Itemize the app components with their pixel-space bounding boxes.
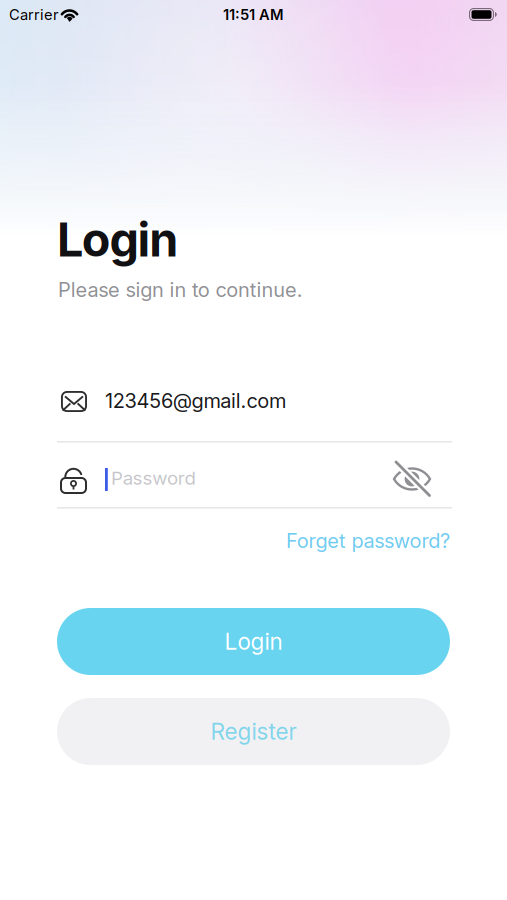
staticText: Forget password?: [286, 529, 450, 553]
button[interactable]: Login: [57, 608, 450, 675]
staticText: Password: [111, 467, 196, 489]
button[interactable]: [391, 458, 433, 500]
staticText: Login: [224, 628, 282, 655]
button[interactable]: 123456@gmail.com: [57, 380, 452, 443]
staticText: 123456@gmail.com: [105, 389, 286, 413]
staticText: Login: [57, 212, 178, 267]
staticText: Carrier: [9, 6, 59, 23]
button[interactable]: Password: [57, 452, 452, 509]
button[interactable]: Forget password?: [286, 529, 450, 553]
staticText: Register: [210, 718, 296, 745]
staticText: 11:51 AM: [223, 6, 284, 23]
button[interactable]: Register: [57, 698, 450, 765]
staticText: Please sign in to continue.: [58, 278, 303, 302]
